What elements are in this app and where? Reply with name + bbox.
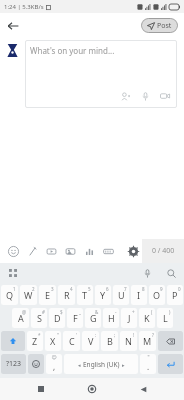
- button[interactable]: ;: [101, 331, 118, 351]
- button[interactable]: GIF: [99, 242, 118, 261]
- staticText: R: [64, 289, 70, 301]
- staticText: English (UK): [83, 360, 120, 369]
- button[interactable]: Emoji: [4, 242, 23, 261]
- staticText: 1: [13, 286, 16, 292]
- staticText: Q: [6, 289, 14, 301]
- staticText: -: [115, 309, 117, 315]
- staticText: K: [144, 312, 150, 324]
- staticText: ;: [114, 332, 116, 338]
- button[interactable]: Backspace: [158, 331, 183, 351]
- button[interactable]: $: [49, 308, 65, 328]
- button[interactable]: ?123: [1, 354, 26, 374]
- staticText: N: [125, 335, 132, 347]
- staticText: C: [69, 335, 75, 347]
- button[interactable]: Settings: [124, 242, 142, 260]
- button[interactable]: Enter: [158, 354, 183, 374]
- button[interactable]: 0: [167, 285, 183, 305]
- button[interactable]: 5: [77, 285, 93, 305]
- button[interactable]: (: [139, 308, 155, 328]
- button[interactable]: What's on your mind...: [25, 40, 177, 108]
- button[interactable]: Recents: [31, 379, 51, 399]
- staticText: M: [143, 335, 152, 347]
- staticText: 4: [70, 286, 73, 292]
- staticText: W: [24, 289, 33, 301]
- button[interactable]: _: [67, 308, 83, 328]
- button[interactable]: Search: [164, 266, 178, 280]
- staticText: Post: [157, 21, 172, 31]
- button[interactable]: :: [82, 331, 99, 351]
- staticText: Z: [32, 335, 38, 347]
- button[interactable]: Video: [42, 242, 61, 261]
- staticText: (: [151, 309, 153, 315]
- staticText: ?123: [6, 359, 22, 369]
- button[interactable]: Poll: [80, 242, 99, 261]
- button[interactable]: Home: [82, 379, 102, 399]
- button[interactable]: Photo: [61, 242, 80, 261]
- button[interactable]: 7: [113, 285, 129, 305]
- staticText: ": [147, 354, 150, 361]
- staticText: ,: [53, 361, 56, 372]
- button[interactable]: #: [31, 308, 47, 328]
- button[interactable]: Voice input: [140, 266, 154, 280]
- button[interactable]: @: [12, 308, 29, 328]
- button[interactable]: 6: [95, 285, 111, 305]
- button[interactable]: ): [157, 308, 173, 328]
- button[interactable]: Video: [158, 89, 172, 103]
- staticText: #: [42, 309, 45, 315]
- staticText: 1:24 | 5.3KB/s: [4, 3, 44, 11]
- staticText: $: [60, 309, 63, 315]
- staticText: @: [22, 309, 27, 315]
- button[interactable]: ◂: [64, 354, 138, 374]
- button[interactable]: ?: [139, 331, 156, 351]
- staticText: X: [50, 335, 56, 347]
- staticText: 0: [178, 286, 181, 292]
- button[interactable]: 4: [58, 285, 75, 305]
- staticText: :: [95, 332, 97, 338]
- staticText: V: [88, 335, 94, 347]
- button[interactable]: Voice: [138, 89, 152, 103]
- button[interactable]: 8: [131, 285, 147, 305]
- button[interactable]: ☺: [46, 354, 62, 374]
- button[interactable]: Attach: [23, 242, 42, 261]
- button[interactable]: Clipboard: [6, 266, 20, 280]
- staticText: ?: [152, 332, 154, 338]
- staticText: ☺: [51, 354, 57, 360]
- staticText: *: [38, 332, 41, 338]
- button[interactable]: Back: [133, 379, 153, 399]
- staticText: ◂: [78, 362, 81, 368]
- staticText: O: [153, 289, 161, 301]
- button[interactable]: Back: [3, 16, 23, 36]
- button[interactable]: !: [120, 331, 137, 351]
- button[interactable]: -: [103, 308, 119, 328]
- button[interactable]: Shift: [1, 331, 25, 351]
- button[interactable]: 3: [39, 285, 56, 305]
- staticText: 7: [124, 286, 127, 292]
- staticText: H: [108, 312, 115, 324]
- button[interactable]: Tag people: [118, 89, 132, 103]
- button[interactable]: &: [85, 308, 101, 328]
- staticText: B: [107, 335, 113, 347]
- staticText: .: [147, 361, 150, 372]
- button[interactable]: Emoji: [28, 354, 44, 374]
- button[interactable]: ": [140, 354, 156, 374]
- button[interactable]: +: [121, 308, 137, 328]
- staticText: P: [172, 289, 178, 301]
- button[interactable]: *: [27, 331, 43, 351]
- staticText: G: [90, 312, 97, 324]
- button[interactable]: 9: [149, 285, 165, 305]
- staticText: 6: [106, 286, 109, 292]
- staticText: 9: [160, 286, 163, 292]
- button[interactable]: 2: [20, 285, 37, 305]
- button[interactable]: 1: [1, 285, 18, 305]
- staticText: E: [45, 289, 51, 301]
- button[interactable]: ': [63, 331, 80, 351]
- staticText: J: [128, 312, 131, 324]
- staticText: A: [18, 312, 24, 324]
- staticText: ▸: [122, 362, 125, 368]
- staticText: F: [73, 312, 78, 324]
- button[interactable]: ": [45, 331, 61, 351]
- staticText: S: [37, 312, 42, 324]
- button[interactable]: Post: [141, 18, 178, 33]
- staticText: 3: [51, 286, 54, 292]
- staticText: ): [169, 309, 171, 315]
